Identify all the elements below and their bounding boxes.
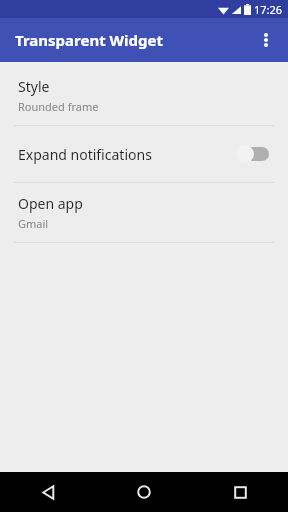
staticText: Expand notifications [18, 145, 236, 164]
staticText: Style [18, 77, 50, 96]
staticText: Open app [18, 194, 83, 213]
button[interactable]: Recent apps [192, 472, 288, 512]
button[interactable]: More options [250, 24, 282, 56]
button[interactable]: Style [0, 66, 288, 125]
staticText: Gmail [18, 216, 49, 231]
staticText: Transparent Widget [15, 30, 163, 50]
button[interactable]: Open app [0, 183, 288, 242]
staticText: Rounded frame [18, 99, 99, 114]
button[interactable]: Back [0, 472, 96, 512]
staticText: 17:26 [254, 2, 283, 17]
button[interactable]: Home [96, 472, 192, 512]
button[interactable]: Expand notifications [0, 126, 288, 182]
